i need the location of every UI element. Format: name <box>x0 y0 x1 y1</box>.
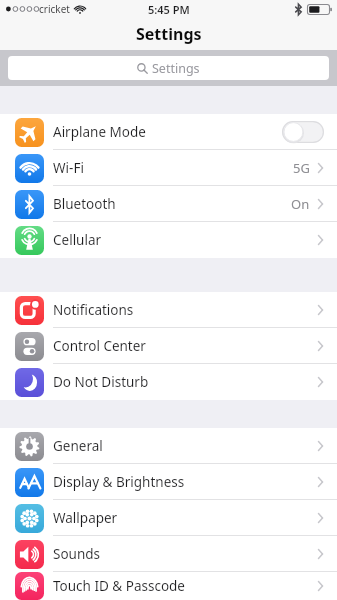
button[interactable]: Wallpaper <box>0 500 337 536</box>
staticText: General <box>53 437 103 455</box>
staticText: Sounds <box>53 545 101 563</box>
staticText: cricket <box>39 2 70 16</box>
staticText: Bluetooth <box>53 195 116 213</box>
button[interactable]: Display & Brightness <box>0 464 337 500</box>
staticText: On <box>291 195 310 213</box>
button[interactable]: Search Settings <box>8 56 329 80</box>
staticText: Airplane Mode <box>53 123 146 141</box>
button[interactable]: Notifications <box>0 292 337 328</box>
button[interactable]: Bluetooth <box>0 186 337 222</box>
button[interactable]: General <box>0 428 337 464</box>
staticText: Display & Brightness <box>53 473 185 491</box>
button[interactable]: Cellular <box>0 222 337 258</box>
staticText: Control Center <box>53 337 146 355</box>
staticText: Touch ID & Passcode <box>53 577 185 595</box>
staticText: Notifications <box>53 301 134 319</box>
staticText: Settings <box>152 60 200 77</box>
button[interactable]: Sounds <box>0 536 337 572</box>
staticText: 5G <box>293 159 310 177</box>
button[interactable]: Airplane Mode toggle <box>282 121 324 143</box>
button[interactable]: Touch ID & Passcode <box>0 572 337 600</box>
staticText: Settings <box>136 23 202 45</box>
staticText: Do Not Disturb <box>53 373 149 391</box>
staticText: Cellular <box>53 231 102 249</box>
staticText: 5:45 PM <box>148 2 190 17</box>
button[interactable]: Wi-Fi <box>0 150 337 186</box>
button[interactable]: Control Center <box>0 328 337 364</box>
staticText: Wallpaper <box>53 509 118 527</box>
button[interactable]: Airplane Mode <box>0 114 337 150</box>
button[interactable]: Do Not Disturb <box>0 364 337 400</box>
staticText: Wi-Fi <box>53 159 84 177</box>
